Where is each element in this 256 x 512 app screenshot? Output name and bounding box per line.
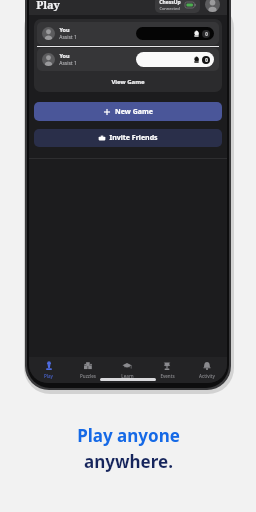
button[interactable]: 0: [136, 52, 214, 67]
button[interactable]: 0: [136, 27, 214, 40]
button[interactable]: Events: [147, 357, 187, 383]
staticText: Assist 1: [59, 34, 77, 41]
button[interactable]: Play: [29, 357, 68, 383]
staticText: Connected: [159, 6, 180, 11]
staticText: Assist 1: [59, 60, 77, 67]
button[interactable]: Activity: [187, 357, 227, 383]
button[interactable]: Invite Friends: [34, 129, 222, 147]
staticText: Activity: [199, 373, 215, 379]
button[interactable]: You: [34, 19, 222, 92]
staticText: 0: [205, 57, 208, 63]
button[interactable]: New Game: [34, 102, 222, 121]
button[interactable]: You: [37, 22, 219, 45]
staticText: Learn: [121, 373, 134, 379]
button[interactable]: Puzzles: [68, 357, 107, 383]
staticText: Play: [44, 373, 53, 379]
staticText: You: [59, 52, 70, 59]
button[interactable]: ChessUp: [155, 0, 200, 13]
staticText: 0: [205, 31, 208, 37]
staticText: New Game: [115, 107, 153, 117]
staticText: anywhere.: [84, 450, 173, 473]
staticText: Play: [36, 0, 60, 12]
staticText: ChessUp: [159, 0, 181, 6]
staticText: Play anyone: [77, 424, 180, 447]
button[interactable]: Learn: [107, 357, 147, 383]
staticText: Events: [160, 373, 175, 379]
staticText: You: [59, 26, 70, 33]
button[interactable]: View Game: [34, 76, 222, 88]
button[interactable]: Profile: [205, 0, 220, 12]
staticText: View Game: [111, 78, 145, 86]
button[interactable]: You: [37, 48, 219, 71]
staticText: Invite Friends: [109, 133, 158, 143]
staticText: Puzzles: [80, 373, 96, 379]
